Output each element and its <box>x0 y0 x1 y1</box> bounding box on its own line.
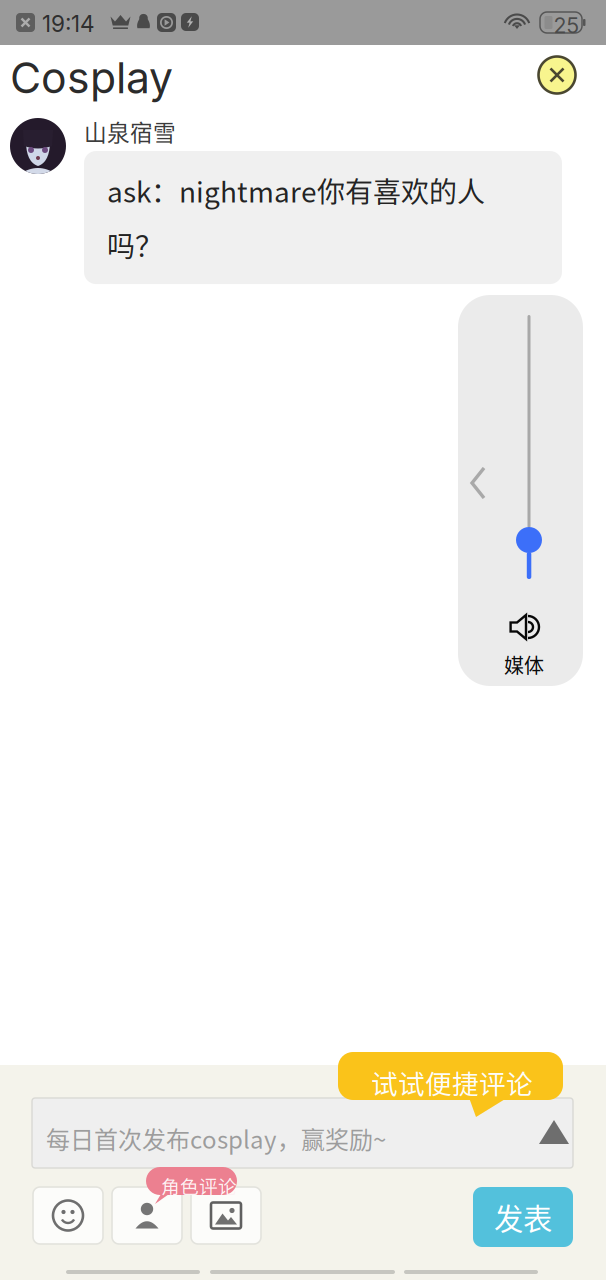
button[interactable]: Emoji <box>33 1187 103 1244</box>
staticText: 发表 <box>494 1196 552 1238</box>
staticText: 试试便捷评论 <box>371 1063 533 1102</box>
button[interactable]: Close <box>535 53 579 97</box>
button[interactable]: 发表 <box>473 1187 573 1247</box>
staticText: ask：nightmare你有喜欢的人吗？ <box>107 170 485 265</box>
staticText: 媒体 <box>504 650 544 679</box>
button[interactable]: 每日首次发布cosplay，赢奖励~ <box>32 1098 573 1168</box>
staticText: 角色评论 <box>161 1172 237 1199</box>
staticText: 19:14 <box>42 10 95 37</box>
button[interactable]: Image <box>191 1187 261 1244</box>
button[interactable]: Role comment <box>112 1187 182 1244</box>
staticText: 每日首次发布cosplay，赢奖励~ <box>46 1121 386 1156</box>
staticText: Cosplay <box>10 52 173 104</box>
staticText: 山泉宿雪 <box>84 115 176 148</box>
staticText: 25 <box>553 12 579 38</box>
